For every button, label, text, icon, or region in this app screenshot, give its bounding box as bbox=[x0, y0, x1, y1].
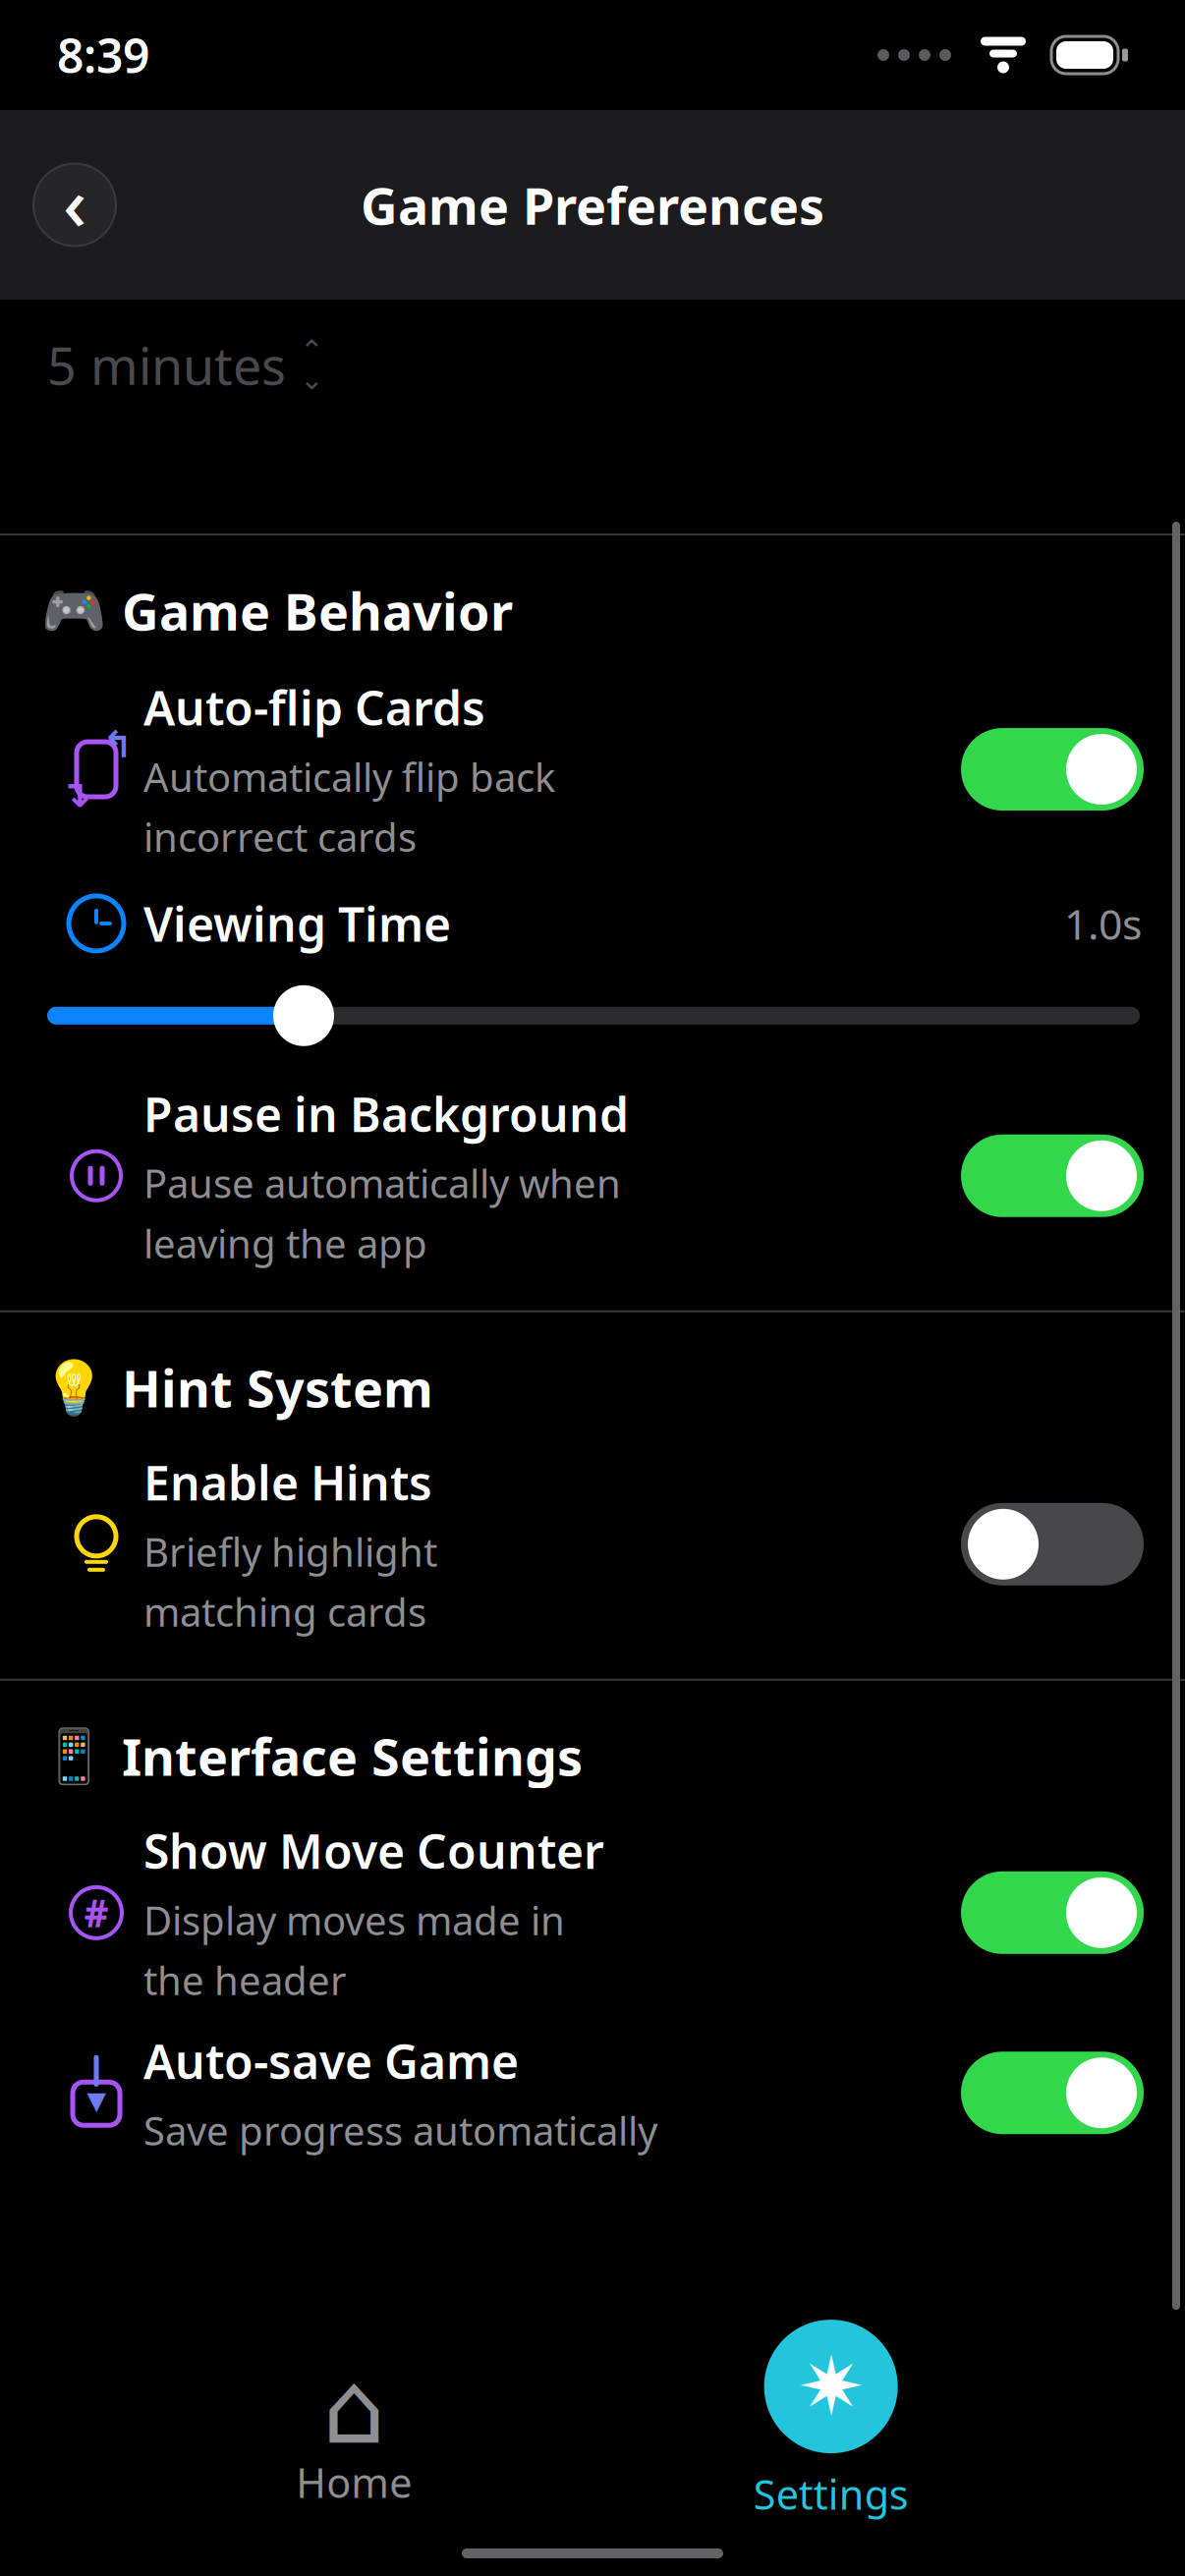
staticText: leaving the app bbox=[143, 1217, 427, 1269]
staticText: 🎮 bbox=[41, 581, 106, 641]
staticText: matching cards bbox=[143, 1585, 426, 1638]
staticText: ⌄ bbox=[300, 363, 324, 396]
staticText: Auto-flip Cards bbox=[143, 676, 485, 739]
staticText: # bbox=[84, 1887, 109, 1938]
staticText: Save progress automatically bbox=[143, 2104, 657, 2156]
button[interactable]: Pause in Background bbox=[0, 1063, 1185, 1310]
button[interactable]: ⌂ bbox=[231, 2331, 477, 2509]
staticText: 8:39 bbox=[57, 24, 149, 86]
staticText: 5 minutes bbox=[47, 331, 286, 399]
staticText: Briefly highlight bbox=[143, 1525, 437, 1577]
staticText: Viewing Time bbox=[143, 892, 451, 955]
staticText: Enable Hints bbox=[143, 1451, 432, 1513]
button[interactable]: ↰ bbox=[0, 664, 1185, 876]
button[interactable]: Viewing time slider bbox=[0, 955, 1185, 1047]
button[interactable]: ✷ bbox=[708, 2320, 954, 2521]
staticText: Home bbox=[296, 2455, 412, 2509]
staticText: ↰ bbox=[102, 724, 133, 765]
staticText: ✷ bbox=[797, 2340, 865, 2433]
staticText: 1.0s bbox=[1064, 896, 1142, 951]
staticText: Auto-save Game bbox=[143, 2030, 519, 2092]
staticText: ‹ bbox=[63, 153, 86, 251]
staticText: Automatically flip back bbox=[143, 750, 555, 803]
button[interactable]: ▼ bbox=[0, 2020, 1185, 2164]
staticText: ↴ bbox=[60, 773, 90, 815]
staticText: 📱 bbox=[41, 1726, 106, 1786]
button[interactable]: Back bbox=[28, 158, 122, 252]
staticText: ⌂ bbox=[323, 2352, 385, 2465]
staticText: Pause automatically when bbox=[143, 1157, 621, 1209]
staticText: the header bbox=[143, 1954, 347, 2006]
button[interactable]: Enable Hints bbox=[0, 1441, 1185, 1679]
staticText: 💡 bbox=[41, 1358, 106, 1417]
staticText: Pause in Background bbox=[143, 1082, 629, 1145]
staticText: Settings bbox=[753, 2467, 909, 2521]
staticText: Interface Settings bbox=[122, 1722, 583, 1790]
staticText: ▼ bbox=[87, 2087, 106, 2115]
staticText: Game Behavior bbox=[122, 577, 513, 645]
staticText: Show Move Counter bbox=[143, 1819, 604, 1882]
button[interactable]: # bbox=[0, 1809, 1185, 2020]
staticText: incorrect cards bbox=[143, 810, 417, 863]
staticText: Display moves made in bbox=[143, 1894, 565, 1946]
staticText: Hint System bbox=[122, 1354, 433, 1422]
staticText: Game Preferences bbox=[361, 171, 824, 239]
staticText: ⌃ bbox=[300, 334, 324, 367]
